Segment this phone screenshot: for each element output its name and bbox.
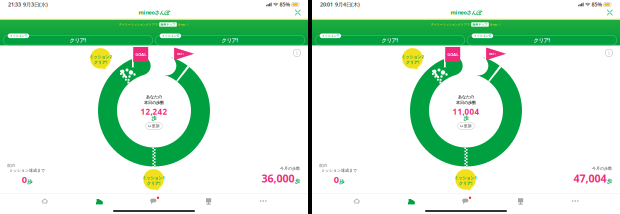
button[interactable]: さんぽ xyxy=(72,194,127,208)
button[interactable]: 更新 xyxy=(458,123,474,129)
button[interactable]: チャット xyxy=(127,194,181,208)
staticText: 無料チップ xyxy=(472,23,487,26)
staticText: 次の xyxy=(319,163,327,168)
staticText: 無料チップ xyxy=(160,23,175,26)
staticText: ミッション達成まで xyxy=(9,168,45,173)
button[interactable]: GOAL xyxy=(444,47,461,68)
button[interactable]: ミッション1 xyxy=(455,169,476,192)
staticText: ミッション達成まで xyxy=(321,168,357,173)
staticText: 歩 xyxy=(151,115,156,122)
staticText: 歩 xyxy=(607,178,612,185)
button[interactable]: クリア! xyxy=(315,33,465,44)
staticText: ミッション1 xyxy=(10,34,27,37)
staticText: 47,004 xyxy=(574,171,607,185)
button[interactable]: ミッション1 xyxy=(143,169,164,192)
button[interactable]: 特典 xyxy=(493,194,548,208)
button[interactable]: START xyxy=(173,47,195,69)
staticText: 36,000 xyxy=(262,171,295,185)
staticText: 85% xyxy=(591,1,602,8)
button[interactable]: デイリーミッションクリアで xyxy=(312,22,620,27)
button[interactable]: その他 xyxy=(548,194,602,208)
staticText: 歩 xyxy=(295,178,300,185)
staticText: 本日の歩数 xyxy=(456,100,476,105)
staticText: クリア! xyxy=(147,181,160,186)
button[interactable]: クリア! xyxy=(3,33,153,44)
staticText: 0 xyxy=(22,173,27,185)
staticText: 歩 xyxy=(463,115,468,122)
button[interactable]: ヘルプ xyxy=(602,46,616,60)
staticText: ミッション2 xyxy=(89,54,111,59)
staticText: 更新 xyxy=(464,123,472,128)
button[interactable]: ヘルプ xyxy=(290,46,304,60)
staticText: ミッション2 xyxy=(474,34,491,37)
staticText: クリア! xyxy=(406,60,419,65)
staticText: ミッション1 xyxy=(455,175,477,180)
staticText: 更新 xyxy=(152,123,160,128)
button[interactable]: 閉じる xyxy=(605,7,615,18)
staticText: ミッション1 xyxy=(143,175,165,180)
staticText: クリア! xyxy=(69,37,86,44)
button[interactable]: チャット xyxy=(439,194,493,208)
button[interactable]: さんぽ xyxy=(384,194,439,208)
button[interactable]: 特典 xyxy=(181,194,236,208)
staticText: 次の xyxy=(7,163,15,168)
staticText: クリア! xyxy=(94,60,107,65)
staticText: ミッション2 xyxy=(401,54,423,59)
staticText: 今月の歩数 xyxy=(592,166,612,171)
button[interactable]: ミッション2 xyxy=(90,48,111,71)
staticText: 21:33 9月3日(水) xyxy=(8,1,48,8)
staticText: 本日の歩数 xyxy=(144,100,164,105)
staticText: をGET！ xyxy=(490,23,501,26)
staticText: 0 xyxy=(334,173,339,185)
staticText: をGET！ xyxy=(178,23,189,26)
staticText: mineoさんぽ xyxy=(138,9,169,16)
button[interactable]: GOAL xyxy=(132,47,149,68)
staticText: デイリーミッションクリアで xyxy=(431,23,470,26)
button[interactable]: クリア! xyxy=(467,33,617,44)
button[interactable]: 更新 xyxy=(146,123,162,129)
staticText: ミッション1 xyxy=(322,34,339,37)
staticText: あなたの xyxy=(458,94,474,99)
button[interactable]: ホーム xyxy=(17,194,72,208)
staticText: 12,242 xyxy=(140,106,167,117)
button[interactable]: その他 xyxy=(236,194,290,208)
button[interactable]: ミッション2 xyxy=(402,48,423,71)
staticText: クリア! xyxy=(459,181,472,186)
staticText: GOAL xyxy=(447,52,458,57)
button[interactable]: クリア! xyxy=(155,33,305,44)
staticText: ミッション2 xyxy=(162,34,179,37)
staticText: クリア! xyxy=(533,37,550,44)
staticText: 今月の歩数 xyxy=(280,166,300,171)
staticText: GOAL xyxy=(135,52,146,57)
button[interactable]: START xyxy=(485,47,507,69)
staticText: 20:01 9月4日(木) xyxy=(320,1,360,8)
staticText: あなたの xyxy=(146,94,162,99)
button[interactable]: ホーム xyxy=(329,194,384,208)
staticText: 歩 xyxy=(339,178,344,185)
staticText: デイリーミッションクリアで xyxy=(119,23,158,26)
staticText: mineoさんぽ xyxy=(450,9,481,16)
staticText: 85% xyxy=(279,1,290,8)
staticText: クリア! xyxy=(381,37,398,44)
staticText: 11,004 xyxy=(452,106,479,117)
staticText: START xyxy=(176,52,184,55)
staticText: 歩 xyxy=(27,178,32,185)
staticText: クリア! xyxy=(221,37,238,44)
staticText: START xyxy=(488,52,496,55)
button[interactable]: 閉じる xyxy=(293,7,303,18)
button[interactable]: デイリーミッションクリアで xyxy=(0,22,308,27)
